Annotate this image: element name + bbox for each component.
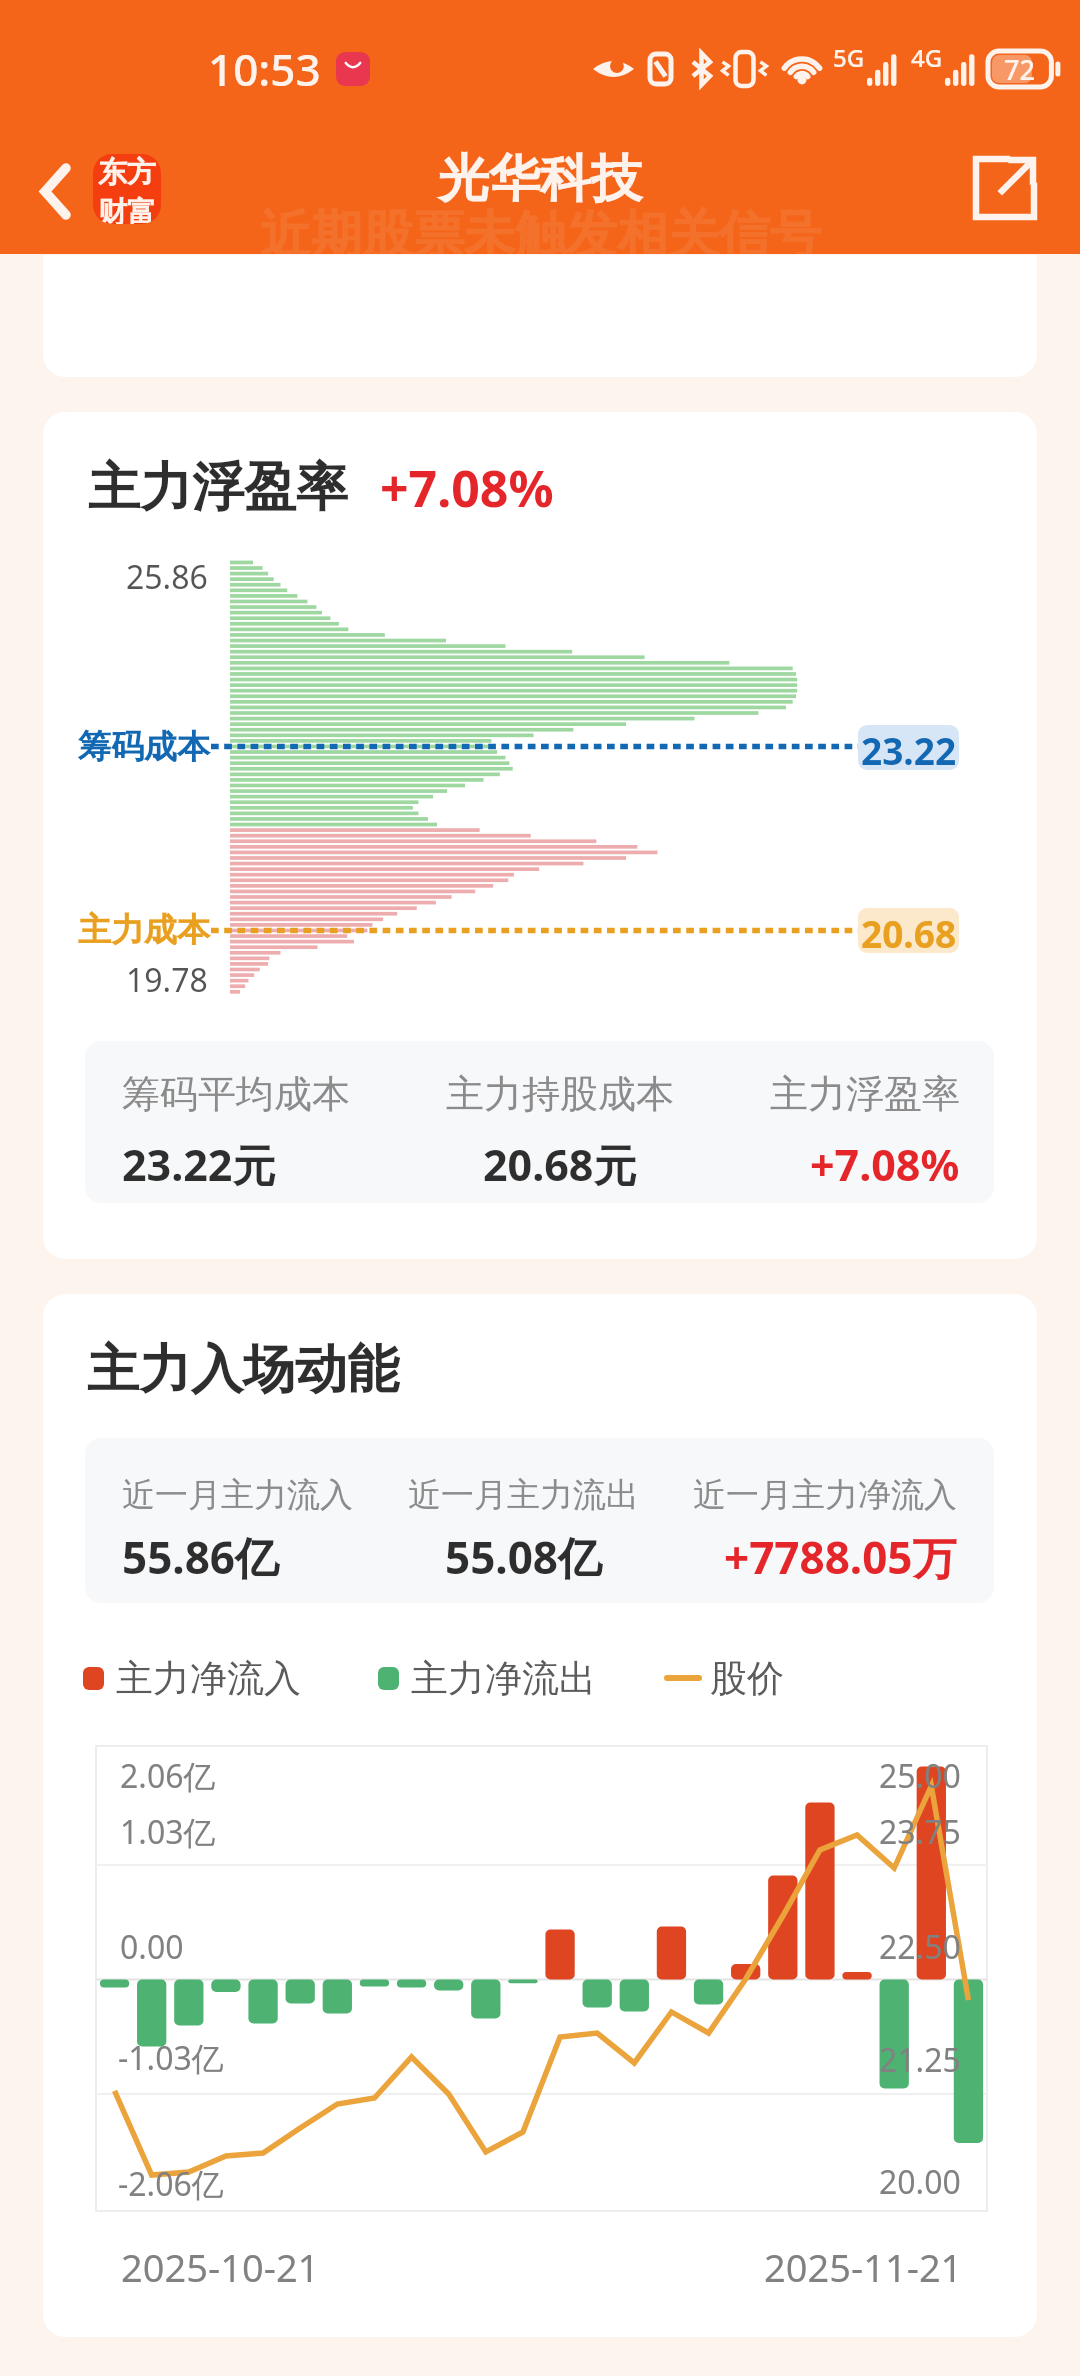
staticText: +7.08%: [810, 1135, 960, 1194]
staticText: 1.03亿: [120, 1810, 216, 1854]
staticText: 72: [1004, 51, 1035, 88]
staticText: 筹码平均成本: [122, 1070, 350, 1118]
staticText: 近期股票未触发相关信号: [260, 203, 821, 267]
staticText: 20.68: [861, 908, 957, 953]
staticText: 近一月主力流出: [408, 1474, 639, 1516]
staticText: 主力持股成本: [446, 1070, 674, 1118]
staticText: 23.22元: [122, 1135, 276, 1194]
staticText: 近一月主力净流入: [693, 1474, 957, 1516]
staticText: 2025-10-21: [121, 2241, 320, 2293]
staticText: 21.25: [879, 2038, 961, 2082]
staticText: 22.50: [879, 1925, 961, 1969]
staticText: 4G: [911, 41, 943, 74]
staticText: 东方: [98, 154, 156, 191]
staticText: 主力成本: [78, 909, 210, 951]
staticText: 光华科技: [438, 147, 642, 211]
staticText: +7788.05万: [724, 1527, 957, 1587]
button[interactable]: East Money logo: [93, 154, 161, 224]
staticText: 19.78: [126, 958, 208, 1002]
staticText: 近一月主力流入: [122, 1474, 353, 1516]
staticText: 23.22: [861, 725, 957, 770]
button[interactable]: Back: [10, 146, 100, 236]
staticText: 2.06亿: [120, 1754, 216, 1798]
staticText: 主力浮盈率: [770, 1070, 960, 1118]
staticText: 25.00: [879, 1754, 961, 1798]
staticText: 20.68元: [483, 1135, 637, 1194]
staticText: 2025-11-21: [764, 2241, 963, 2293]
staticText: 主力净流出: [411, 1655, 596, 1702]
button[interactable]: Share: [960, 143, 1050, 233]
staticText: 55.86亿: [122, 1527, 280, 1587]
staticText: +7.08%: [380, 454, 554, 522]
staticText: 20.00: [879, 2160, 961, 2204]
staticText: 主力净流入: [116, 1655, 301, 1702]
staticText: -2.06亿: [118, 2162, 224, 2206]
staticText: 25.86: [126, 555, 208, 599]
staticText: 主力入场动能: [87, 1337, 399, 1403]
staticText: 23.75: [879, 1810, 961, 1854]
staticText: 0.00: [120, 1925, 184, 1969]
staticText: 55.08亿: [445, 1527, 603, 1587]
staticText: 10:53: [208, 39, 321, 99]
staticText: 5G: [833, 41, 865, 74]
staticText: -1.03亿: [118, 2036, 224, 2080]
staticText: 筹码成本: [78, 726, 210, 768]
staticText: 主力浮盈率: [88, 455, 348, 521]
staticText: 股价: [710, 1655, 784, 1702]
staticText: 财富: [98, 194, 156, 224]
